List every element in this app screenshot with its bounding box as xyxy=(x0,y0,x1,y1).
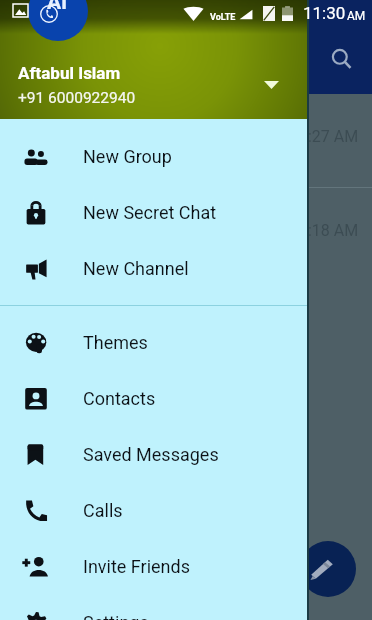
button[interactable]: New Group xyxy=(0,129,307,185)
staticText: AI xyxy=(47,0,68,15)
button[interactable]: Profile picture xyxy=(28,0,88,41)
button[interactable]: Themes xyxy=(0,315,307,371)
staticText: Calls xyxy=(83,500,123,521)
staticText: AM xyxy=(347,9,366,23)
staticText: VoLTE xyxy=(210,12,236,23)
staticText: New Secret Chat xyxy=(83,202,217,223)
button[interactable]: New Channel xyxy=(0,241,307,297)
staticText: Contacts xyxy=(83,388,156,409)
staticText: Saved Messages xyxy=(83,444,219,465)
button[interactable]: 10:27 AM xyxy=(0,94,372,188)
button[interactable]: New Secret Chat xyxy=(0,185,307,241)
button[interactable]: Profile picture xyxy=(0,0,307,119)
button[interactable]: Settings xyxy=(0,595,307,620)
button[interactable]: Invite Friends xyxy=(0,539,307,595)
staticText: New Group xyxy=(83,146,172,167)
staticText: Invite Friends xyxy=(83,556,190,577)
button[interactable]: Calls xyxy=(0,483,307,539)
button[interactable]: Search xyxy=(320,37,362,79)
staticText: 10:18 AM xyxy=(290,221,359,240)
staticText: 10:27 AM xyxy=(290,127,359,146)
button[interactable]: Contacts xyxy=(0,371,307,427)
staticText: Themes xyxy=(83,332,148,353)
button[interactable]: Expand accounts xyxy=(258,71,286,99)
staticText: +91 6000922940 xyxy=(18,89,136,107)
staticText: Settings xyxy=(83,612,149,620)
staticText: New Channel xyxy=(83,258,189,279)
button[interactable]: Saved Messages xyxy=(0,427,307,483)
button[interactable]: 10:18 AM xyxy=(0,188,372,282)
staticText: 11:30 xyxy=(303,3,346,23)
button[interactable]: New message xyxy=(300,541,356,597)
staticText: Aftabul Islam xyxy=(18,63,121,83)
